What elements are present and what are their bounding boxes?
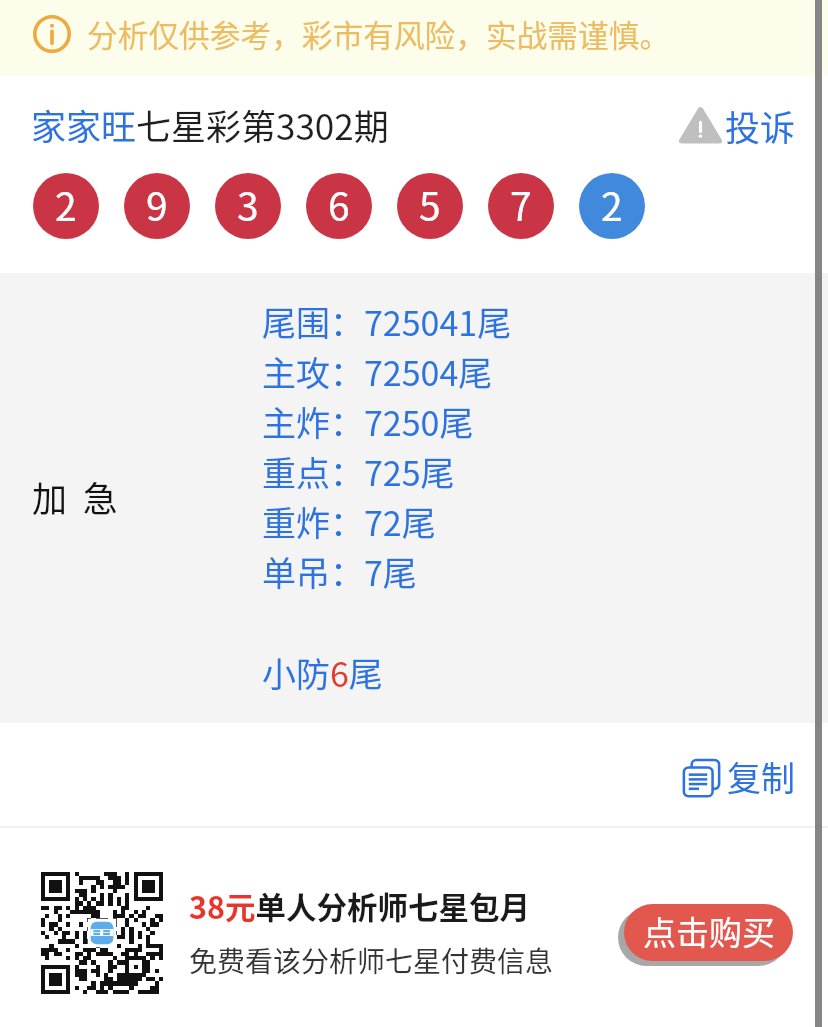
button[interactable]: 投诉 — [680, 98, 796, 149]
staticText: 3 — [237, 176, 259, 232]
other: 复制 — [681, 756, 722, 797]
staticText: 重点：725尾 — [262, 447, 455, 496]
button[interactable]: 2 — [579, 173, 645, 239]
staticText: 7 — [510, 176, 532, 232]
staticText: 38元单人分析师七星包月 — [189, 884, 530, 928]
button[interactable]: 二维码 — [41, 872, 163, 994]
button[interactable]: 9 — [124, 173, 190, 239]
button[interactable]: 6 — [306, 173, 372, 239]
staticText: 投诉 — [725, 100, 796, 151]
button[interactable]: 家家旺七星彩第3302期 — [31, 99, 389, 150]
button[interactable] — [0, 273, 828, 723]
staticText: 加 急 — [32, 471, 118, 522]
staticText: 5 — [419, 176, 441, 232]
button[interactable]: 2 — [33, 173, 99, 239]
other: 提示 — [33, 15, 71, 53]
staticText: 6 — [328, 176, 350, 232]
other: 二维码 — [41, 872, 163, 994]
button[interactable]: 7 — [488, 173, 554, 239]
button[interactable]: 提示 — [0, 0, 828, 76]
button[interactable]: 3 — [215, 173, 281, 239]
staticText: 尾围：725041尾 — [262, 297, 512, 346]
button[interactable]: 38元单人分析师七星包月 — [189, 884, 554, 981]
button[interactable]: 复制 — [681, 752, 795, 801]
other: 投诉 — [680, 106, 721, 147]
staticText: 分析仅供参考，彩市有风险，实战需谨慎。 — [87, 11, 671, 55]
staticText: 点击购买 — [643, 907, 775, 955]
staticText: 家家旺七星彩第3302期 — [31, 99, 389, 150]
staticText: 9 — [146, 176, 168, 232]
staticText: 单吊：7尾 — [262, 547, 417, 596]
staticText: 小防6尾 — [262, 648, 383, 697]
staticText: 重炸：72尾 — [262, 497, 436, 546]
staticText: 免费看该分析师七星付费信息 — [189, 940, 554, 981]
staticText: 复制 — [727, 752, 795, 801]
staticText: 主攻：72504尾 — [262, 347, 493, 396]
staticText: 2 — [601, 176, 623, 232]
button[interactable]: 5 — [397, 173, 463, 239]
staticText: 主炸：7250尾 — [262, 397, 474, 446]
button[interactable]: 点击购买 — [624, 904, 793, 961]
staticText: 2 — [55, 176, 77, 232]
